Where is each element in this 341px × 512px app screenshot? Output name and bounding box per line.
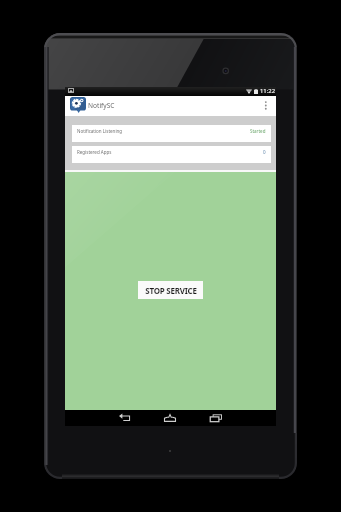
staticText: Notification Listening bbox=[77, 128, 123, 134]
staticText: STOP SERVICE bbox=[145, 285, 197, 296]
staticText: 11:22 bbox=[260, 87, 276, 95]
button[interactable]: Back bbox=[118, 410, 132, 426]
button[interactable]: STOP SERVICE bbox=[138, 281, 203, 299]
button[interactable]: More options bbox=[260, 96, 276, 116]
button[interactable]: Notification Listening bbox=[72, 125, 271, 142]
staticText: Started bbox=[250, 128, 266, 134]
staticText: Registered Apps bbox=[77, 149, 112, 155]
button[interactable]: Recents bbox=[209, 410, 223, 426]
staticText: NotifySC bbox=[88, 101, 115, 110]
button[interactable]: Registered Apps bbox=[72, 146, 271, 163]
button[interactable]: Home bbox=[163, 410, 177, 426]
other: App icon bbox=[70, 97, 86, 113]
staticText: 0 bbox=[263, 149, 266, 155]
